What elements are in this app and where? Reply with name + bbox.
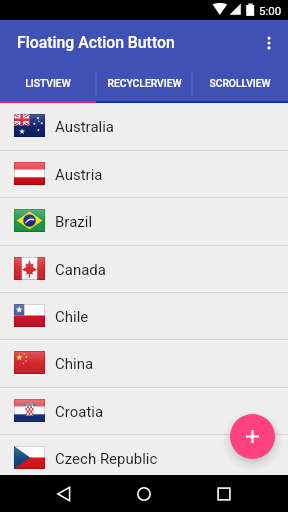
button[interactable]: Home — [124, 475, 164, 512]
button[interactable]: SCROLLVIEW — [192, 65, 288, 103]
button[interactable]: More options — [250, 20, 288, 65]
staticText: 5:00 — [259, 4, 282, 17]
staticText: Czech Republic — [55, 450, 158, 468]
staticText: SCROLLVIEW — [209, 77, 271, 89]
button[interactable]: China — [0, 340, 288, 387]
button[interactable]: Austria — [0, 151, 288, 198]
button[interactable]: Brazil — [0, 198, 288, 245]
staticText: Austria — [55, 166, 103, 184]
button[interactable]: RECYCLERVIEW — [96, 65, 192, 103]
staticText: China — [55, 355, 94, 373]
button[interactable]: Back — [44, 475, 84, 512]
button[interactable]: Add — [230, 414, 275, 459]
button[interactable]: Chile — [0, 293, 288, 340]
staticText: Brazil — [55, 213, 93, 231]
button[interactable]: Recent apps — [204, 475, 244, 512]
button[interactable]: Croatia — [0, 388, 288, 435]
staticText: LISTVIEW — [25, 77, 71, 89]
button[interactable]: LISTVIEW — [0, 65, 96, 103]
staticText: RECYCLERVIEW — [107, 77, 182, 89]
staticText: Australia — [55, 118, 115, 136]
button[interactable]: Australia — [0, 103, 288, 150]
staticText: Chile — [55, 308, 89, 326]
staticText: Canada — [55, 261, 106, 279]
button[interactable]: Czech Republic — [0, 435, 288, 482]
button[interactable]: Canada — [0, 246, 288, 293]
staticText: Croatia — [55, 403, 104, 421]
staticText: Floating Action Button — [17, 33, 175, 52]
